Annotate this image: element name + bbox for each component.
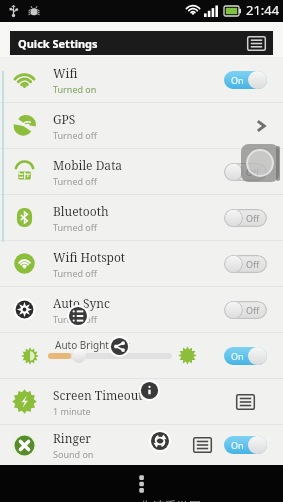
button[interactable]: Off bbox=[224, 209, 267, 227]
button[interactable]: On bbox=[224, 436, 267, 454]
button[interactable]: GPS bbox=[0, 103, 283, 148]
staticText: Turned off bbox=[53, 175, 97, 187]
button[interactable]: Auto Sync bbox=[0, 287, 283, 332]
button[interactable]: Off bbox=[224, 301, 267, 319]
button[interactable]: Mobile Data bbox=[0, 149, 283, 194]
staticText: 21:44 bbox=[246, 1, 280, 19]
staticText: Off bbox=[246, 304, 260, 316]
staticText: Turned off bbox=[53, 313, 97, 325]
staticText: Turned off bbox=[53, 221, 97, 233]
staticText: Wifi Hotspot bbox=[53, 249, 126, 265]
staticText: On bbox=[231, 439, 244, 451]
staticText: On bbox=[231, 350, 244, 362]
button[interactable]: Off bbox=[224, 163, 267, 181]
staticText: Turned off bbox=[53, 129, 97, 141]
staticText: Turned on bbox=[53, 83, 97, 95]
button[interactable]: Ringer bbox=[0, 425, 283, 465]
staticText: 御速手游网 bbox=[141, 498, 201, 502]
button[interactable]: Bluetooth bbox=[0, 195, 283, 240]
staticText: 1 minute bbox=[53, 405, 91, 417]
button[interactable]: Wifi bbox=[0, 57, 283, 102]
button[interactable]: Wifi Hotspot bbox=[0, 241, 283, 286]
staticText: Auto Brightness bbox=[55, 338, 131, 352]
staticText: Bluetooth bbox=[53, 203, 109, 219]
staticText: Ringer bbox=[53, 430, 91, 446]
staticText: Screen Timeout bbox=[53, 387, 143, 403]
button[interactable]: Screen Timeout bbox=[0, 379, 283, 424]
button[interactable]: More options bbox=[132, 471, 152, 495]
staticText: Off bbox=[246, 212, 260, 224]
button[interactable]: Off bbox=[224, 255, 267, 273]
button[interactable]: On bbox=[224, 71, 267, 89]
button[interactable]: On bbox=[224, 347, 267, 365]
staticText: Auto Sync bbox=[53, 295, 110, 311]
staticText: Wifi bbox=[53, 65, 78, 81]
button[interactable]: Menu bbox=[246, 35, 267, 52]
staticText: Quick Settings bbox=[18, 36, 98, 51]
staticText: Turned off bbox=[53, 267, 97, 279]
staticText: Off bbox=[246, 258, 260, 270]
staticText: Sound on bbox=[53, 448, 94, 460]
staticText: On bbox=[231, 74, 244, 86]
staticText: GPS bbox=[53, 111, 76, 127]
staticText: Mobile Data bbox=[53, 157, 123, 173]
staticText: Off bbox=[246, 166, 260, 178]
button[interactable]: Auto Brightness bbox=[0, 333, 283, 378]
